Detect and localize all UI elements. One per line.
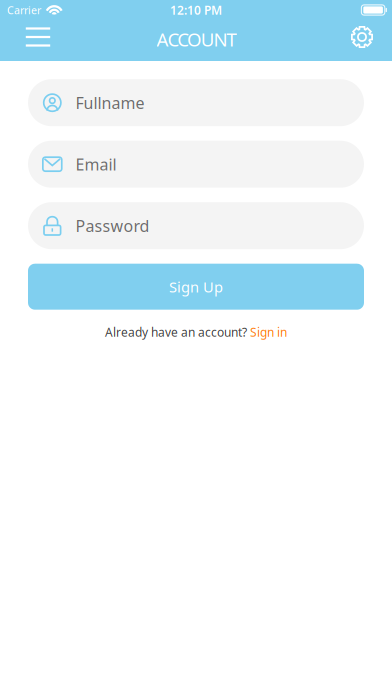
button[interactable]: Already have an account? bbox=[105, 324, 287, 340]
staticText: Carrier bbox=[7, 3, 41, 17]
staticText: ACCOUNT bbox=[157, 27, 236, 52]
button[interactable]: Menu bbox=[16, 20, 60, 54]
staticText: 12:10 PM bbox=[170, 2, 222, 18]
staticText: Already have an account? bbox=[105, 324, 247, 340]
button[interactable]: Settings bbox=[340, 20, 384, 54]
staticText: Sign in bbox=[250, 324, 287, 340]
staticText: Sign Up bbox=[169, 277, 223, 296]
staticText: Password bbox=[75, 215, 149, 236]
staticText: Fullname bbox=[75, 92, 144, 113]
staticText: Email bbox=[75, 154, 116, 175]
button[interactable]: Sign Up bbox=[28, 264, 364, 310]
